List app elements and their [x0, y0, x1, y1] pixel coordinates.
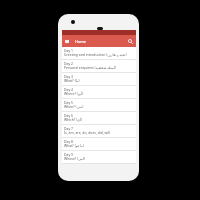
button[interactable]: Menu	[62, 36, 72, 47]
staticText: What? (ما هو)	[64, 143, 85, 148]
button[interactable]: Search	[125, 36, 136, 47]
button[interactable]: Day 6	[62, 112, 136, 125]
staticText: Day 3	[64, 74, 73, 79]
staticText: Day 1	[64, 48, 73, 53]
staticText: Greeting and introduction (تحية و تعارف)	[64, 52, 127, 57]
button[interactable]: Day 2	[62, 60, 136, 73]
button[interactable]: Day 7	[62, 125, 136, 138]
staticText: Day 6	[64, 113, 73, 118]
staticText: When? (متى)	[64, 104, 84, 109]
staticText: Day 8	[64, 139, 73, 144]
staticText: Is, am, are, do, does, did, will	[64, 130, 110, 135]
button[interactable]: Day 4	[62, 86, 136, 99]
staticText: Day 7	[64, 126, 73, 131]
button[interactable]: Day 5	[62, 99, 136, 112]
button[interactable]: Day 1	[62, 47, 136, 60]
staticText: Where? (أين)	[64, 91, 84, 96]
staticText: Home	[75, 39, 86, 44]
button[interactable]: Day 8	[62, 138, 136, 151]
staticText: Day 9	[64, 152, 73, 157]
staticText: Day 5	[64, 100, 73, 105]
staticText: Day 2	[64, 61, 73, 66]
staticText: Personal enquiries (أسئلة شخصية)	[64, 65, 117, 70]
staticText: What? (ما)	[64, 78, 80, 83]
staticText: Whose? (لمن)	[64, 156, 85, 161]
staticText: Which? (أي)	[64, 117, 82, 122]
button[interactable]: Day 3	[62, 73, 136, 86]
staticText: Day 4	[64, 87, 73, 92]
button[interactable]: Day 9	[62, 151, 136, 164]
